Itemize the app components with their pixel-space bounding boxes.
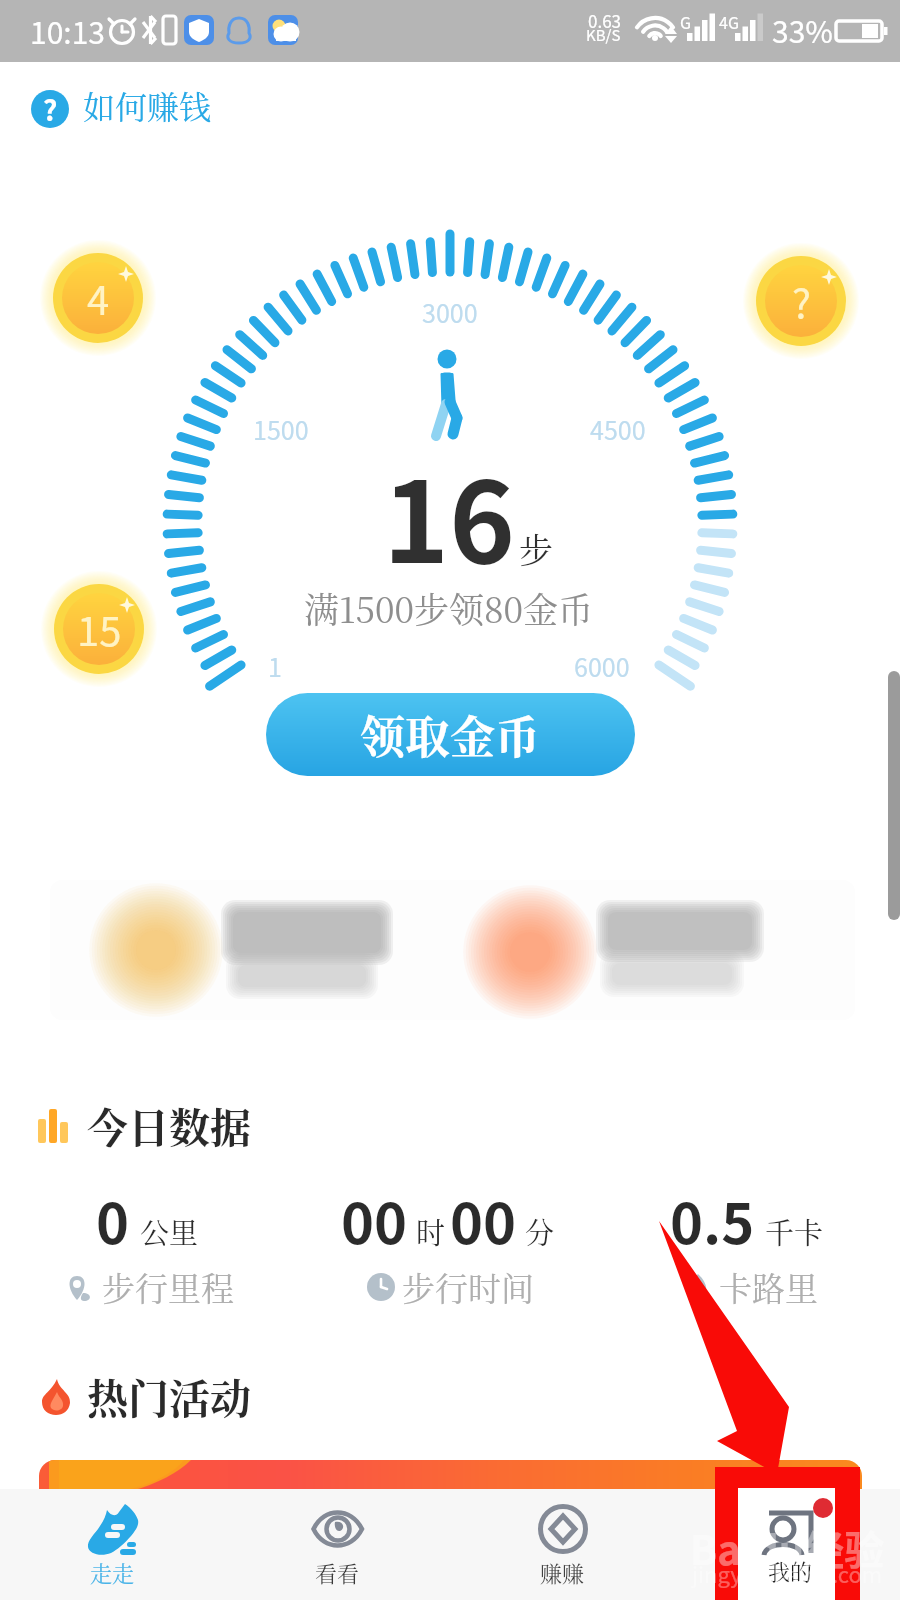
staticText: 33% bbox=[772, 8, 833, 51]
button[interactable]: 看看 bbox=[225, 1489, 450, 1600]
staticText: 16 bbox=[383, 433, 516, 595]
staticText: 赚赚 bbox=[540, 1557, 585, 1589]
staticText: 4 bbox=[87, 269, 110, 327]
button[interactable]: ? bbox=[28, 82, 228, 132]
button[interactable]: 领取金币 bbox=[266, 693, 635, 776]
button[interactable]: 0.5 bbox=[600, 1179, 900, 1314]
staticText: 卡路里 bbox=[719, 1263, 818, 1310]
staticText: 10:13 bbox=[30, 9, 105, 52]
staticText: 步 bbox=[519, 524, 553, 573]
button[interactable]: 赚赚 bbox=[450, 1489, 675, 1600]
staticText: 3000 bbox=[422, 294, 478, 330]
staticText: 我的 bbox=[765, 1557, 810, 1589]
staticText: G bbox=[680, 10, 692, 33]
other: Walking bbox=[424, 346, 480, 442]
button[interactable]: 我的 bbox=[675, 1489, 900, 1600]
staticText: 4G bbox=[719, 10, 739, 33]
button[interactable]: 今日数据 bbox=[38, 1096, 251, 1155]
staticText: 满1500步领80金币 bbox=[304, 583, 594, 633]
staticText: 千卡 bbox=[765, 1211, 824, 1253]
button[interactable]: 我的 bbox=[739, 1491, 834, 1584]
staticText: 公里 bbox=[140, 1211, 199, 1253]
staticText: 0 bbox=[96, 1179, 130, 1260]
staticText: 走走 bbox=[90, 1557, 135, 1589]
staticText: 0.63 bbox=[588, 8, 622, 33]
staticText: 00 bbox=[341, 1179, 408, 1260]
button[interactable] bbox=[39, 1460, 862, 1590]
button[interactable]: 热门活动 bbox=[40, 1367, 251, 1426]
staticText: 如何赚钱 bbox=[83, 82, 212, 128]
button[interactable]: Coin ? bbox=[741, 241, 861, 361]
staticText: Baidu经验 bbox=[690, 1519, 885, 1577]
staticText: KB/S bbox=[586, 24, 621, 46]
staticText: 00 bbox=[450, 1179, 517, 1260]
staticText: 15 bbox=[77, 600, 122, 658]
button[interactable]: Coin 4 bbox=[38, 238, 158, 358]
button[interactable]: Coin 15 bbox=[39, 569, 159, 689]
staticText: ? bbox=[43, 90, 58, 127]
staticText: 1 bbox=[268, 648, 282, 684]
button[interactable]: 走走 bbox=[0, 1489, 225, 1600]
staticText: 步行时间 bbox=[402, 1263, 534, 1310]
staticText: jingyan.baidu.com bbox=[692, 1557, 883, 1589]
staticText: 领取金币 bbox=[360, 702, 541, 767]
staticText: 1500 bbox=[253, 411, 309, 447]
staticText: 今日数据 bbox=[87, 1096, 251, 1155]
staticText: ? bbox=[792, 272, 811, 330]
staticText: 我的 bbox=[768, 1555, 813, 1587]
staticText: 步行里程 bbox=[102, 1263, 234, 1310]
button[interactable]: 00 bbox=[300, 1179, 600, 1314]
staticText: 看看 bbox=[315, 1557, 360, 1589]
staticText: 分 bbox=[525, 1211, 555, 1253]
button[interactable] bbox=[50, 880, 855, 1020]
staticText: 6000 bbox=[574, 648, 630, 684]
staticText: 时 bbox=[416, 1211, 446, 1253]
button[interactable]: 0 bbox=[0, 1179, 300, 1314]
staticText: 热门活动 bbox=[87, 1367, 251, 1426]
staticText: 0.5 bbox=[670, 1179, 755, 1260]
staticText: 4500 bbox=[590, 411, 646, 447]
